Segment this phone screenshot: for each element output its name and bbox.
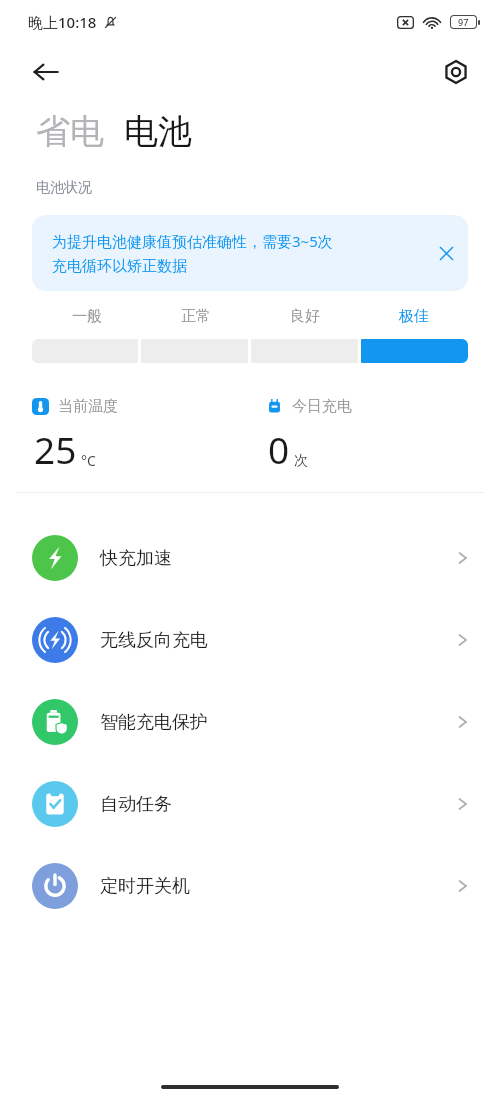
button[interactable]: 自动任务: [0, 763, 500, 845]
staticText: °C: [81, 451, 96, 470]
button[interactable]: Settings: [432, 48, 480, 96]
staticText: 良好: [290, 307, 320, 326]
staticText: 电池: [124, 110, 192, 153]
staticText: 晚上10:18: [28, 12, 97, 32]
staticText: 快充加速: [100, 547, 458, 570]
staticText: 定时开关机: [100, 875, 458, 898]
staticText: 次: [294, 452, 308, 470]
button[interactable]: 无线反向充电: [0, 599, 500, 681]
staticText: 25: [34, 424, 77, 474]
staticText: 0: [268, 424, 290, 474]
staticText: 智能充电保护: [100, 711, 458, 734]
staticText: 当前温度: [58, 397, 118, 416]
staticText: 97: [458, 16, 469, 28]
button[interactable]: 电池: [124, 110, 192, 153]
staticText: 极佳: [399, 307, 429, 326]
staticText: 今日充电: [292, 397, 352, 416]
button[interactable]: Back: [22, 48, 70, 96]
button[interactable]: 智能充电保护: [0, 681, 500, 763]
staticText: 省电: [36, 110, 104, 153]
button[interactable]: 定时开关机: [0, 845, 500, 927]
staticText: 一般: [72, 307, 102, 326]
staticText: 自动任务: [100, 793, 458, 816]
staticText: 无线反向充电: [100, 629, 458, 652]
staticText: 为提升电池健康值预估准确性，需要3~5次 充电循环以矫正数据: [52, 231, 424, 275]
button[interactable]: 快充加速: [0, 517, 500, 599]
staticText: 电池状况: [36, 179, 92, 197]
button[interactable]: 为提升电池健康值预估准确性，需要3~5次 充电循环以矫正数据: [32, 215, 468, 291]
staticText: 正常: [181, 307, 211, 326]
button[interactable]: Close: [424, 231, 468, 275]
button[interactable]: 省电: [36, 110, 104, 153]
